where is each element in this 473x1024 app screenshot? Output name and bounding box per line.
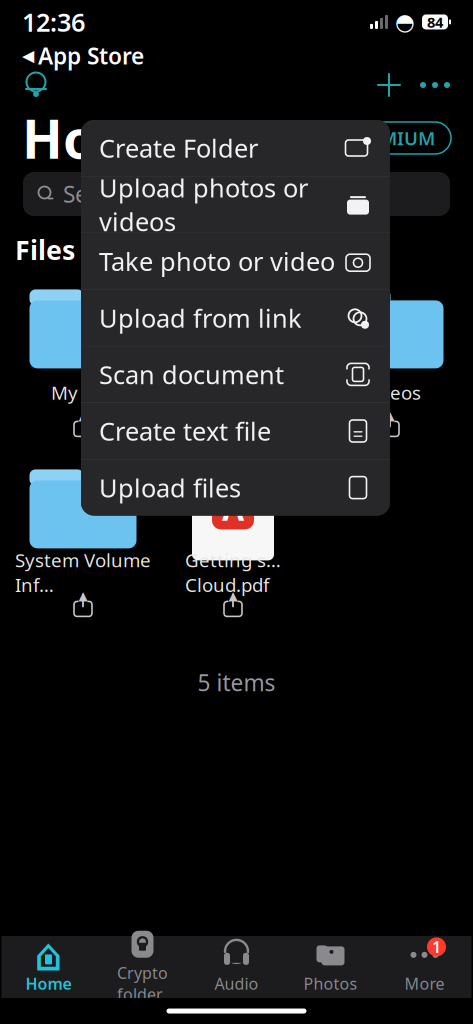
staticText: Create text file — [99, 414, 271, 448]
button[interactable]: Audio — [189, 938, 283, 996]
staticText: More — [404, 973, 444, 994]
staticText: Photos — [303, 973, 357, 994]
staticText: 84 — [427, 12, 443, 32]
staticText: A — [222, 487, 244, 530]
staticText: ▲ — [78, 589, 87, 603]
button[interactable]: 1 — [377, 938, 471, 996]
button[interactable]: More options — [411, 63, 459, 107]
staticText: Files — [15, 232, 75, 267]
button[interactable]: Create text file — [81, 403, 390, 459]
staticText: …ideos — [359, 380, 421, 405]
button[interactable]: Scan document — [81, 346, 390, 402]
staticText: ⌂ — [34, 929, 63, 981]
staticText: 1 — [432, 936, 441, 957]
staticText: ◓ — [395, 9, 415, 35]
staticText: My M… — [51, 380, 115, 405]
button[interactable]: Add — [367, 63, 411, 107]
staticText: ▲ — [228, 589, 237, 603]
staticText: Audio — [214, 973, 258, 994]
button[interactable]: Search — [23, 172, 450, 216]
staticText: Create Folder — [99, 131, 258, 165]
staticText: Take photo or video — [99, 244, 335, 278]
button[interactable]: My M… — [8, 275, 158, 439]
button[interactable]: Photos — [283, 938, 377, 996]
button[interactable]: A — [158, 455, 308, 619]
staticText: Upload photos or videos — [99, 171, 308, 238]
staticText: ▲ — [78, 409, 87, 423]
button[interactable]: Upload photos or videos — [81, 177, 390, 233]
staticText: ▲ — [385, 409, 394, 423]
button[interactable]: …ideos — [315, 275, 465, 439]
staticText: Scan document — [99, 358, 284, 391]
button[interactable]: Upload files — [81, 460, 390, 516]
staticText: Search — [63, 179, 135, 209]
staticText: System Volume Inf… — [15, 548, 151, 597]
staticText: Home — [25, 973, 71, 994]
staticText: 12:36 — [22, 5, 85, 39]
staticText: Upload from link — [99, 301, 302, 335]
button[interactable]: ⌂ — [1, 938, 95, 996]
staticText: Crypto folder — [117, 962, 168, 1005]
button[interactable]: Crypto folder — [95, 938, 189, 996]
button[interactable]: Notifications — [14, 63, 58, 107]
staticText: Home — [22, 103, 180, 173]
staticText: ◀ — [22, 47, 34, 65]
staticText: App Store — [38, 41, 144, 71]
staticText: Upload files — [99, 471, 241, 504]
button[interactable]: Create Folder — [81, 120, 390, 176]
button[interactable]: Upload from link — [81, 290, 390, 346]
button[interactable]: Take photo or video — [81, 233, 390, 289]
staticText: 5 items — [197, 667, 275, 697]
button[interactable]: System Volume Inf… — [8, 455, 158, 619]
staticText: PREMIUM — [347, 126, 435, 150]
staticText: Getting s…Cloud.pdf — [185, 548, 281, 597]
button[interactable]: PREMIUM — [331, 122, 451, 154]
